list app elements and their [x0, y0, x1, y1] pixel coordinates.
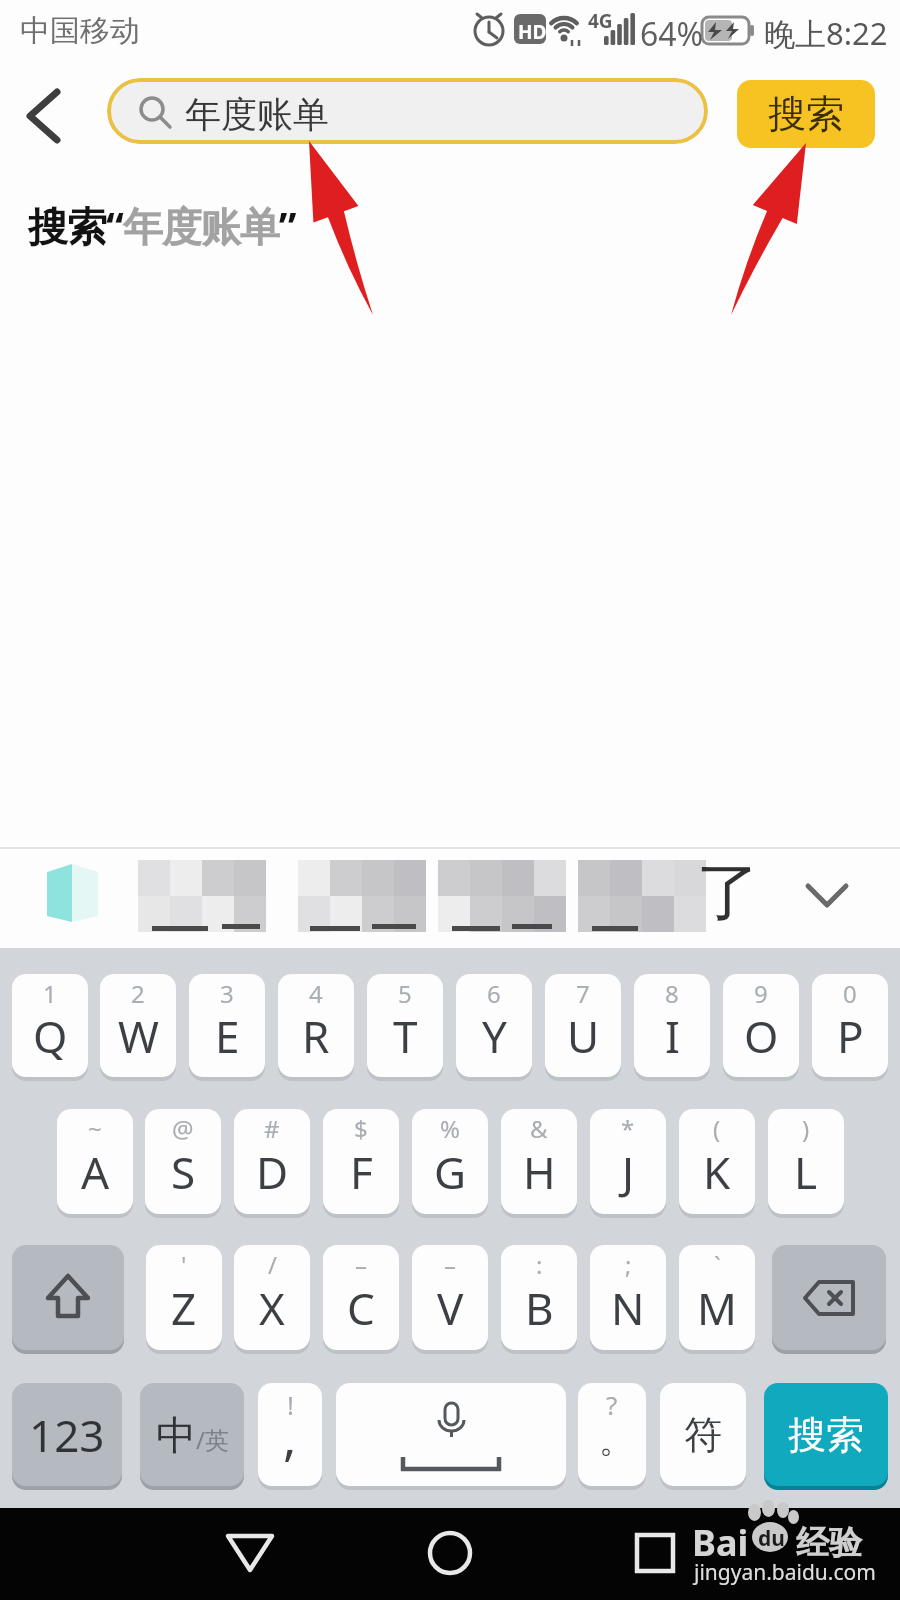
staticText: R: [302, 1006, 330, 1066]
button[interactable]: &: [501, 1109, 577, 1214]
staticText: B: [525, 1278, 554, 1338]
staticText: ~: [88, 1112, 102, 1145]
staticText: 9: [754, 977, 768, 1010]
staticText: 0: [843, 977, 857, 1010]
staticText: 2: [131, 977, 145, 1010]
button[interactable]: 5: [367, 974, 443, 1077]
staticText: N: [611, 1278, 645, 1338]
staticText: 中国移动: [20, 12, 140, 50]
staticText: W: [118, 1006, 159, 1066]
staticText: ': [181, 1248, 187, 1281]
button[interactable]: [336, 1383, 566, 1486]
staticText: ;: [625, 1248, 632, 1281]
staticText: A: [81, 1142, 110, 1202]
staticText: 搜索“年度账单”: [28, 198, 296, 253]
button[interactable]: –: [412, 1245, 488, 1350]
staticText: /: [268, 1248, 277, 1281]
staticText: Y: [482, 1006, 507, 1066]
staticText: C: [347, 1278, 375, 1338]
staticText: –: [444, 1248, 456, 1281]
staticText: F: [350, 1142, 373, 1202]
staticText: !: [287, 1387, 294, 1422]
staticText: 7: [576, 977, 590, 1010]
staticText: H: [523, 1142, 556, 1202]
button[interactable]: ': [146, 1245, 222, 1350]
button[interactable]: 123: [12, 1383, 122, 1486]
staticText: 4: [309, 977, 323, 1010]
staticText: T: [393, 1006, 418, 1066]
staticText: 中/英: [156, 1410, 229, 1460]
button[interactable]: ?: [578, 1383, 646, 1486]
button[interactable]: –: [323, 1245, 399, 1350]
staticText: S: [171, 1142, 196, 1202]
staticText: (: [713, 1112, 721, 1145]
staticText: 搜索: [768, 90, 844, 138]
button[interactable]: %: [412, 1109, 488, 1214]
staticText: $: [354, 1112, 368, 1145]
staticText: E: [215, 1006, 240, 1066]
button[interactable]: !: [258, 1383, 322, 1486]
button[interactable]: 4: [278, 974, 354, 1077]
staticText: M: [697, 1278, 737, 1338]
staticText: Z: [171, 1278, 197, 1338]
button[interactable]: /: [234, 1245, 310, 1350]
staticText: @: [172, 1112, 194, 1145]
button[interactable]: :: [501, 1245, 577, 1350]
staticText: 6: [487, 977, 501, 1010]
staticText: :: [536, 1248, 543, 1281]
staticText: ): [802, 1112, 810, 1145]
button[interactable]: 符: [660, 1383, 746, 1486]
staticText: jingyan.baidu.com: [694, 1558, 876, 1587]
staticText: L: [794, 1142, 818, 1202]
staticText: –: [355, 1248, 367, 1281]
staticText: du: [758, 1524, 785, 1553]
staticText: 5: [398, 977, 412, 1010]
staticText: Q: [33, 1006, 68, 1066]
button[interactable]: *: [590, 1109, 666, 1214]
staticText: #: [264, 1112, 280, 1145]
staticText: *: [621, 1112, 635, 1145]
button[interactable]: $: [323, 1109, 399, 1214]
staticText: 4G: [588, 8, 613, 34]
button[interactable]: 搜索: [737, 80, 875, 148]
button[interactable]: ~: [57, 1109, 133, 1214]
button[interactable]: 年度账单: [107, 78, 708, 144]
button[interactable]: [12, 1245, 124, 1350]
staticText: K: [703, 1142, 731, 1202]
button[interactable]: 0: [812, 974, 888, 1077]
button[interactable]: 中/英: [140, 1383, 244, 1486]
staticText: `: [714, 1248, 721, 1281]
button[interactable]: 7: [545, 974, 621, 1077]
staticText: 8: [665, 977, 679, 1010]
button[interactable]: [772, 1245, 886, 1350]
button[interactable]: [22, 88, 66, 144]
button[interactable]: 1: [12, 974, 88, 1077]
button[interactable]: ): [768, 1109, 844, 1214]
button[interactable]: ;: [590, 1245, 666, 1350]
staticText: 符: [684, 1411, 722, 1459]
button[interactable]: `: [679, 1245, 755, 1350]
staticText: ,: [283, 1403, 297, 1471]
staticText: &: [530, 1112, 548, 1145]
button[interactable]: 2: [100, 974, 176, 1077]
staticText: 经验: [796, 1522, 862, 1564]
staticText: 搜索: [788, 1411, 864, 1459]
button[interactable]: 8: [634, 974, 710, 1077]
button[interactable]: (: [679, 1109, 755, 1214]
staticText: 年度账单: [185, 92, 329, 137]
staticText: V: [437, 1278, 464, 1338]
staticText: O: [744, 1006, 779, 1066]
button[interactable]: #: [234, 1109, 310, 1214]
staticText: J: [622, 1142, 635, 1202]
staticText: 了: [696, 852, 760, 933]
staticText: U: [567, 1006, 600, 1066]
button[interactable]: 3: [189, 974, 265, 1077]
staticText: ?: [606, 1387, 618, 1422]
button[interactable]: 9: [723, 974, 799, 1077]
button[interactable]: @: [145, 1109, 221, 1214]
button[interactable]: 6: [456, 974, 532, 1077]
staticText: D: [256, 1142, 289, 1202]
staticText: I: [665, 1006, 680, 1066]
staticText: 64%: [640, 12, 704, 56]
button[interactable]: 搜索: [764, 1383, 888, 1486]
